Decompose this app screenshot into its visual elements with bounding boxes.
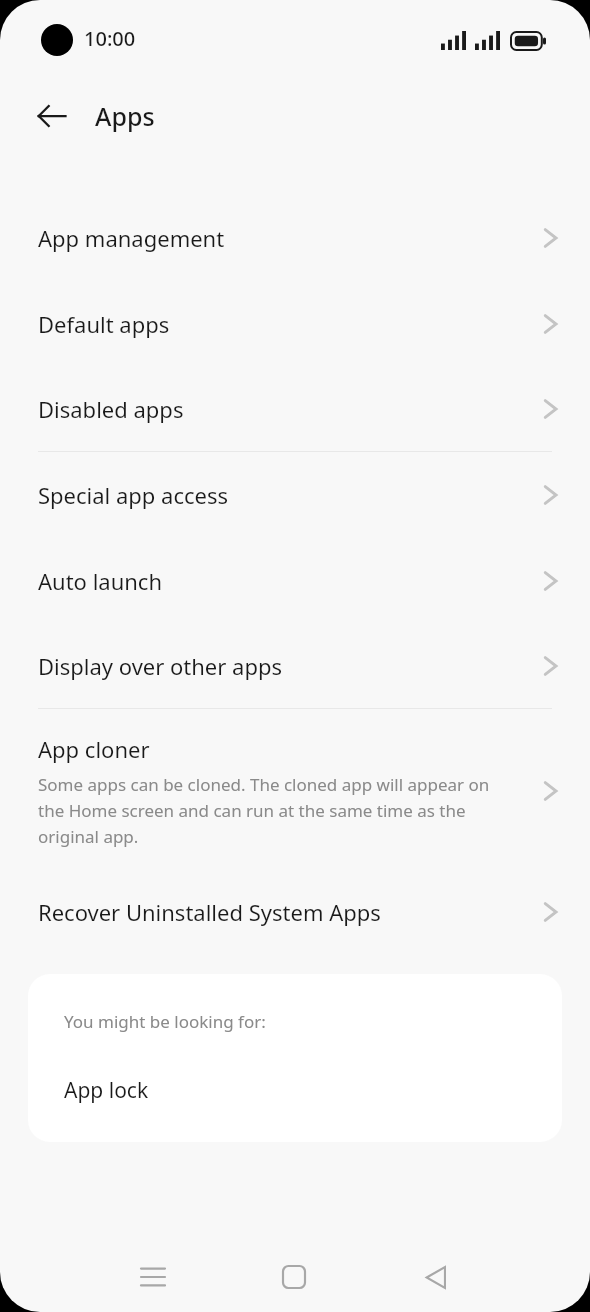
staticText: Default apps — [38, 309, 170, 339]
staticText: You might be looking for: — [64, 1010, 266, 1033]
button[interactable]: Disabled apps — [0, 366, 590, 451]
button[interactable]: App management — [0, 195, 590, 281]
staticText: Disabled apps — [38, 394, 184, 424]
staticText: App cloner — [38, 734, 150, 764]
staticText: Special app access — [38, 480, 229, 510]
staticText: App management — [38, 223, 225, 253]
button[interactable]: Special app access — [0, 452, 590, 538]
staticText: Apps — [95, 99, 155, 133]
button[interactable]: Back — [26, 90, 78, 142]
staticText: Auto launch — [38, 566, 162, 596]
staticText: 10:00 — [84, 25, 136, 52]
button[interactable]: Back — [400, 1242, 470, 1312]
staticText: Some apps can be cloned. The cloned app … — [38, 773, 518, 848]
button[interactable]: App cloner — [0, 709, 590, 873]
button[interactable]: Home — [259, 1242, 329, 1312]
button[interactable]: Default apps — [0, 281, 590, 366]
staticText: App lock — [64, 1076, 149, 1105]
staticText: Recover Uninstalled System Apps — [38, 897, 381, 927]
button[interactable]: Recent apps — [118, 1242, 188, 1312]
staticText: Display over other apps — [38, 651, 283, 681]
button[interactable]: App lock — [28, 1060, 562, 1120]
button[interactable]: Display over other apps — [0, 623, 590, 708]
button[interactable]: Recover Uninstalled System Apps — [0, 873, 590, 951]
button[interactable]: Auto launch — [0, 538, 590, 623]
